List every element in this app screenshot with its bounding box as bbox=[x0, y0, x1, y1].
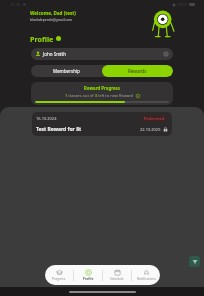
button[interactable]: Progress bbox=[45, 265, 73, 285]
staticText: 1 classes out of 3 left to new Reward bbox=[65, 93, 134, 98]
staticText: 22.10.2025 bbox=[140, 127, 161, 132]
button[interactable]: Membership bbox=[31, 65, 102, 77]
staticText: Notifications bbox=[137, 277, 156, 281]
staticText: blankdepends@gmail.com bbox=[30, 17, 73, 22]
staticText: 16.10.2024 bbox=[36, 116, 57, 121]
button[interactable]: Schedule bbox=[103, 265, 131, 285]
staticText: 100% bbox=[177, 2, 188, 7]
staticText: Progress bbox=[52, 277, 66, 281]
staticText: Membership bbox=[53, 68, 80, 74]
staticText: 15:36 bbox=[10, 2, 21, 7]
button[interactable]: 16.10.2024 bbox=[32, 112, 172, 136]
staticText: Test Reward for 8t bbox=[36, 126, 82, 133]
button[interactable]: Filter bbox=[189, 256, 200, 267]
button[interactable]: Profile bbox=[74, 265, 102, 285]
staticText: Redeemed bbox=[144, 116, 165, 121]
staticText: Profile bbox=[30, 34, 54, 44]
staticText: Welcome, Dad (test) bbox=[30, 10, 76, 16]
staticText: John Smith bbox=[43, 51, 66, 57]
other: Account settings bbox=[163, 51, 169, 57]
button[interactable]: John Smith bbox=[31, 48, 173, 60]
button[interactable]: Rewards bbox=[102, 65, 173, 77]
staticText: Schedule bbox=[110, 277, 124, 281]
button[interactable]: Notifications bbox=[132, 265, 160, 285]
staticText: Rewards bbox=[128, 68, 147, 74]
staticText: Profile bbox=[83, 277, 94, 281]
staticText: Reward Progress bbox=[35, 85, 169, 91]
